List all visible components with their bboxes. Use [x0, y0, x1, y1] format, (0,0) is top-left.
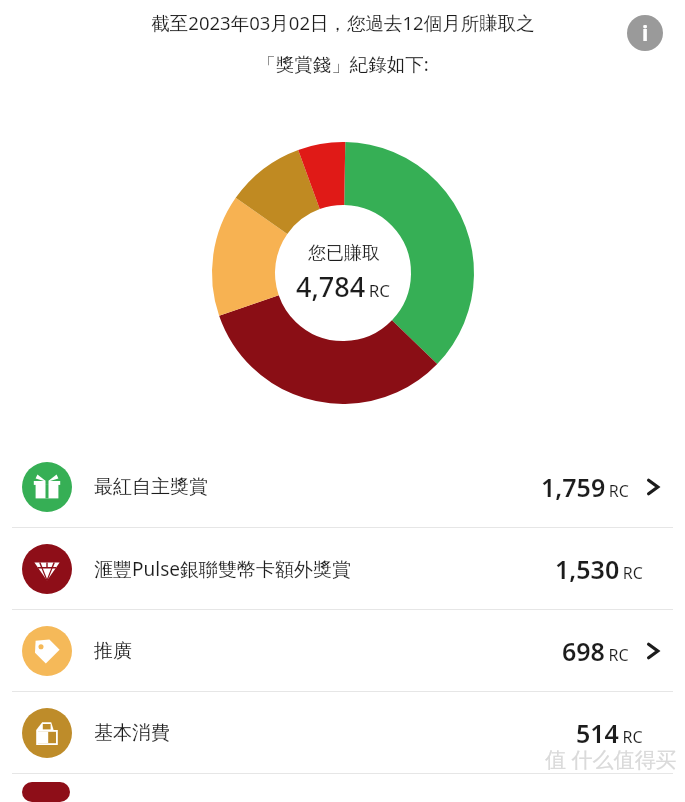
other: Open 推廣	[643, 641, 663, 661]
staticText: 514 RC	[576, 716, 643, 750]
button[interactable]: 推廣	[0, 610, 685, 691]
staticText: i	[642, 19, 649, 48]
other: Open 最紅自主獎賞	[643, 477, 663, 497]
staticText: 1,759 RC	[541, 470, 629, 504]
button[interactable]: 滙豐Pulse銀聯雙幣卡額外獎賞	[0, 528, 685, 609]
button[interactable]: Information	[627, 15, 663, 51]
staticText: 1,530 RC	[555, 552, 643, 586]
staticText: 最紅自主獎賞	[94, 475, 208, 499]
staticText: 698 RC	[562, 634, 629, 668]
button[interactable]: 基本消費	[0, 692, 685, 773]
staticText: 滙豐Pulse銀聯雙幣卡額外獎賞	[94, 556, 351, 582]
staticText: 截至2023年03月02日，您過去12個月所賺取之	[151, 10, 535, 35]
staticText: 4,784 RC	[296, 268, 391, 305]
staticText: 推廣	[94, 639, 132, 663]
staticText: 基本消費	[94, 721, 170, 745]
staticText: 您已賺取	[308, 242, 380, 265]
staticText: 值 什么值得买	[545, 745, 677, 774]
staticText: 「獎賞錢」紀錄如下:	[257, 51, 429, 76]
button[interactable]: 最紅自主獎賞	[0, 446, 685, 527]
